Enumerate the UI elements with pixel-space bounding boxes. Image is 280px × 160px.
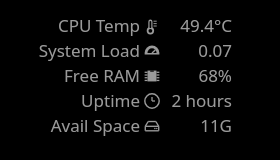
- staticText: Uptime: [81, 89, 140, 112]
- staticText: Free RAM: [64, 64, 140, 87]
- staticText: 11G: [200, 114, 232, 137]
- button[interactable]: CPU Temp: [0, 13, 280, 38]
- button[interactable]: Avail Space: [0, 113, 280, 138]
- staticText: 49.4°C: [180, 14, 232, 37]
- staticText: 0.07: [198, 39, 232, 62]
- button[interactable]: System Load: [0, 38, 280, 63]
- other: CPU temperature: [140, 18, 164, 34]
- other: Available disk space: [140, 118, 164, 134]
- staticText: 2 hours: [171, 89, 232, 112]
- staticText: Avail Space: [50, 114, 140, 137]
- other: Free memory: [140, 68, 164, 84]
- staticText: CPU Temp: [57, 14, 140, 37]
- other: Uptime: [140, 93, 164, 109]
- button[interactable]: Uptime: [0, 88, 280, 113]
- button[interactable]: Free RAM: [0, 63, 280, 88]
- other: System load: [140, 43, 164, 59]
- staticText: System Load: [38, 39, 140, 62]
- staticText: 68%: [198, 64, 232, 87]
